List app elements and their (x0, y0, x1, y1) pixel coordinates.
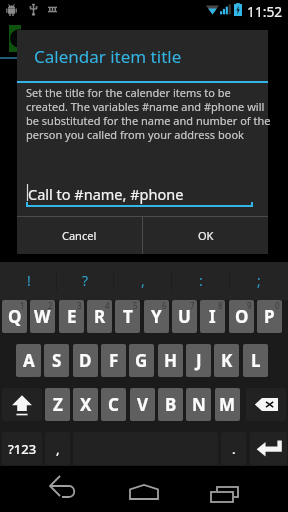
staticText: : (199, 271, 203, 290)
staticText: , (56, 440, 60, 458)
button[interactable]: Y (144, 300, 169, 333)
button[interactable]: N (186, 388, 211, 421)
button[interactable]: Home (124, 479, 164, 503)
staticText: 8 (218, 300, 223, 311)
button[interactable]: B (158, 388, 183, 421)
button[interactable]: Back (38, 471, 86, 507)
button[interactable]: , (45, 432, 70, 465)
staticText: M (219, 393, 236, 416)
button[interactable]: H (158, 344, 183, 377)
button[interactable]: M (215, 388, 240, 421)
staticText: 2 (48, 300, 53, 311)
staticText: N (192, 393, 206, 416)
staticText: H (164, 349, 178, 372)
staticText: 9 (247, 300, 252, 311)
staticText: V (137, 393, 149, 416)
button[interactable]: K (214, 344, 239, 377)
staticText: F (109, 349, 119, 372)
button[interactable]: X (73, 388, 98, 421)
staticText: 6 (162, 300, 167, 311)
button[interactable]: A (16, 344, 41, 377)
button[interactable]: Recents (204, 479, 244, 503)
button[interactable]: U (172, 300, 197, 333)
staticText: 1 (20, 300, 25, 311)
button[interactable]: W (30, 300, 55, 333)
staticText: ! (27, 271, 31, 290)
button[interactable]: T (115, 300, 140, 333)
staticText: A (23, 349, 35, 372)
staticText: P (264, 305, 275, 328)
button[interactable]: Cancel (17, 217, 142, 254)
button[interactable]: ? (57, 262, 114, 300)
button[interactable]: ! (0, 262, 57, 300)
staticText: W (34, 305, 51, 328)
button[interactable]: Shift (2, 388, 42, 421)
staticText: 11:52 (247, 2, 283, 21)
staticText: Calendar item title (34, 45, 182, 68)
staticText: 7 (190, 300, 195, 311)
button[interactable]: F (101, 344, 126, 377)
button[interactable]: : (172, 262, 230, 300)
staticText: T (123, 305, 133, 328)
staticText: J (196, 349, 202, 372)
staticText: Cancel (62, 228, 97, 243)
staticText: G (135, 349, 148, 372)
button[interactable]: , (114, 262, 172, 300)
button[interactable]: Z (45, 388, 70, 421)
button[interactable]: Q (2, 300, 27, 333)
staticText: K (221, 349, 233, 372)
staticText: ; (257, 271, 261, 290)
staticText: ? (82, 271, 89, 290)
staticText: Q (8, 305, 22, 328)
staticText: . (232, 440, 236, 458)
button[interactable]: C (101, 388, 126, 421)
button[interactable]: Backspace (246, 388, 286, 421)
staticText: 4 (105, 300, 110, 311)
button[interactable]: Enter (250, 432, 287, 465)
button[interactable]: J (186, 344, 211, 377)
button[interactable]: ; (230, 262, 288, 300)
button[interactable]: ?123 (2, 432, 42, 465)
staticText: Set the title for the calender items to … (26, 85, 271, 142)
staticText: , (141, 271, 145, 290)
staticText: L (251, 349, 261, 372)
button[interactable]: V (130, 388, 155, 421)
staticText: E (67, 305, 77, 328)
button[interactable]: I (200, 300, 225, 333)
button[interactable]: O (229, 300, 254, 333)
staticText: X (80, 393, 92, 416)
button[interactable]: OK (143, 217, 268, 254)
staticText: R (94, 305, 106, 328)
staticText: 5 (133, 300, 138, 311)
staticText: ?123 (8, 440, 37, 458)
staticText: S (52, 349, 62, 372)
button[interactable]: D (73, 344, 98, 377)
button[interactable]: G (129, 344, 154, 377)
staticText: O (235, 305, 249, 328)
staticText: OK (198, 228, 214, 243)
staticText: Z (53, 393, 63, 416)
staticText: Y (151, 305, 162, 328)
button[interactable]: S (44, 344, 69, 377)
staticText: 0 (275, 300, 280, 311)
staticText: I (209, 305, 216, 328)
staticText: C (108, 393, 119, 416)
staticText: Call to #name, #phone (28, 184, 184, 204)
staticText: D (79, 349, 92, 372)
button[interactable]: E (59, 300, 84, 333)
button[interactable]: L (243, 344, 268, 377)
staticText: B (165, 393, 177, 416)
button[interactable]: P (257, 300, 282, 333)
button[interactable]: R (87, 300, 112, 333)
button[interactable]: . (221, 432, 246, 465)
staticText: 3 (77, 300, 82, 311)
staticText: U (178, 305, 191, 328)
